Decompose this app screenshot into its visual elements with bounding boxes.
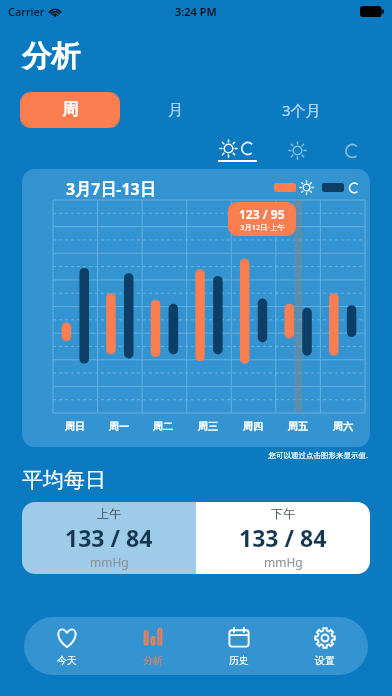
staticText: 上午 <box>97 506 121 521</box>
staticText: 周一 <box>109 420 129 433</box>
staticText: 下午 <box>271 506 295 521</box>
staticText: mmHg <box>90 554 129 570</box>
button[interactable]: All day <box>212 140 263 162</box>
staticText: 设置 <box>315 654 335 667</box>
button[interactable]: 月 <box>120 92 230 128</box>
button[interactable]: 上午 <box>22 502 196 574</box>
button[interactable]: 设置 <box>282 617 368 675</box>
staticText: 周三 <box>198 420 218 433</box>
staticText: 3:24 PM <box>175 4 217 19</box>
staticText: 平均每日 <box>22 467 106 493</box>
staticText: 周二 <box>153 420 173 433</box>
button[interactable]: Morning <box>281 138 314 163</box>
button[interactable]: 今天 <box>24 617 110 675</box>
staticText: 周 <box>62 100 78 120</box>
button[interactable]: 历史 <box>196 617 282 675</box>
staticText: 您可以通过点击图形来显示值. <box>0 450 368 460</box>
button[interactable]: 下午 <box>196 502 370 574</box>
staticText: 3月12日·上午 <box>240 222 285 232</box>
button[interactable]: Evening <box>336 139 368 163</box>
staticText: 分析 <box>143 654 163 667</box>
staticText: 历史 <box>229 654 249 667</box>
staticText: 月 <box>168 101 183 120</box>
staticText: Carrier <box>8 4 45 19</box>
staticText: 周四 <box>243 420 263 433</box>
staticText: 分析 <box>22 38 80 75</box>
button[interactable]: 分析 <box>110 617 196 675</box>
staticText: 周六 <box>333 420 353 433</box>
staticText: 周五 <box>288 420 308 433</box>
button[interactable]: 周 <box>20 92 120 128</box>
button[interactable]: 3个月 <box>230 92 372 128</box>
staticText: 周日 <box>65 420 85 433</box>
staticText: 123 / 95 <box>239 206 285 222</box>
staticText: mmHg <box>264 554 303 570</box>
staticText: 133 / 84 <box>239 522 327 553</box>
staticText: 今天 <box>57 654 77 667</box>
staticText: 133 / 84 <box>65 522 153 553</box>
staticText: 3月7日-13日 <box>66 178 156 200</box>
staticText: 3个月 <box>282 100 321 120</box>
